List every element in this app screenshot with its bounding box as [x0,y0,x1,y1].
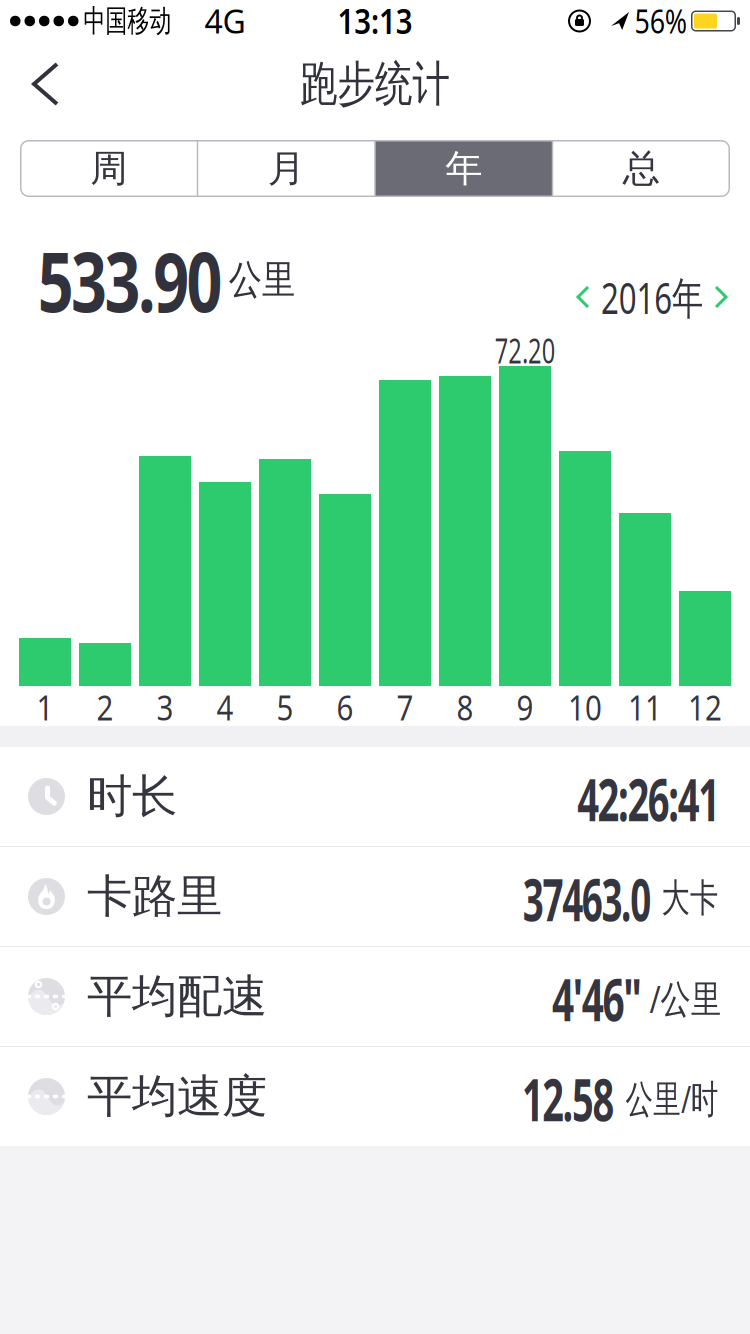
staticText: 13:13 [332,0,417,43]
staticText: 1 [35,684,55,730]
staticText: 11 [625,684,665,730]
button[interactable]: 时长 [0,747,750,846]
staticText: 总 [623,146,660,191]
staticText: 4 [215,684,235,730]
staticText: 时长 [87,769,177,824]
staticText: 月 [268,146,305,191]
staticText: 公里/时 [606,1072,737,1124]
staticText: 大卡 [651,874,729,922]
staticText: 12.58 [495,1058,640,1138]
staticText: 72.20 [480,327,569,373]
staticText: 跑步统计 [279,54,471,113]
staticText: 周 [90,146,127,191]
staticText: 7 [395,684,415,730]
staticText: 5 [275,684,295,730]
staticText: 3 [155,684,175,730]
button[interactable]: 2016年 [578,268,750,326]
staticText: 2 [95,684,115,730]
staticText: 37463.0 [482,858,691,938]
staticText: 12 [685,684,725,730]
staticText: 533.90 [8,225,251,335]
staticText: 平均配速 [87,969,267,1024]
button[interactable]: 周 [20,140,197,197]
staticText: 56% [629,0,692,42]
button[interactable]: 总 [552,140,730,197]
staticText: 卡路里 [87,869,222,924]
button[interactable]: 平均配速 [0,947,750,1046]
button[interactable]: 年 [375,140,552,197]
staticText: 4'46" [527,958,666,1038]
staticText: /公里 [639,972,731,1024]
button[interactable]: 卡路里 [0,847,750,946]
staticText: 年 [445,146,482,191]
staticText: 2016年 [580,268,724,326]
staticText: 42:26:41 [536,758,750,838]
staticText: 10 [565,684,605,730]
staticText: 9 [515,684,535,730]
staticText: 公里 [222,255,302,304]
button[interactable]: 月 [197,140,375,197]
button[interactable]: 平均速度 [0,1047,750,1146]
staticText: 平均速度 [87,1069,267,1124]
staticText: 4G [204,0,245,42]
button[interactable] [0,43,57,125]
staticText: 8 [455,684,475,730]
staticText: 6 [335,684,355,730]
staticText: 中国移动 [65,2,189,40]
